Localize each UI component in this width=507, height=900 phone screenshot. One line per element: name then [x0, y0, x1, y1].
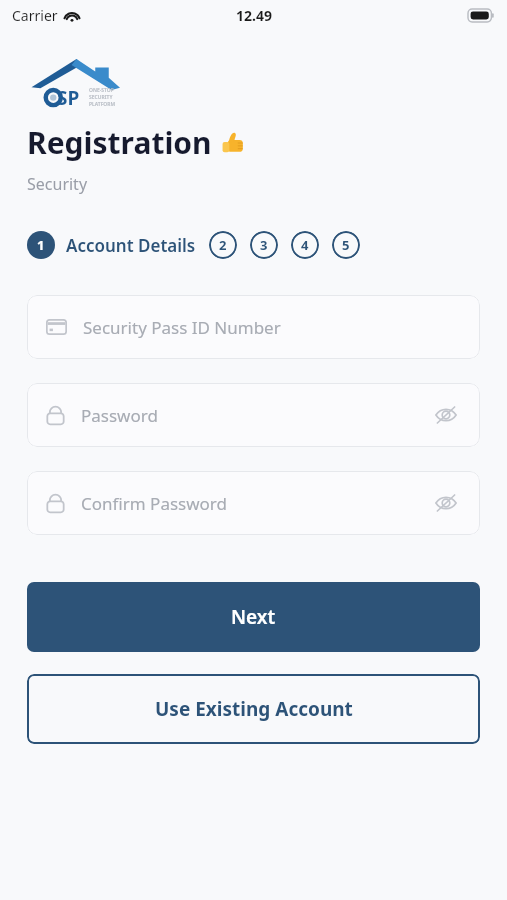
staticText: SP — [57, 85, 80, 108]
staticText: ONE-STOP — [89, 87, 114, 94]
staticText: 4 — [301, 236, 309, 254]
staticText: Carrier — [12, 6, 58, 25]
staticText: 12.49 — [236, 6, 272, 25]
staticText: 2 — [219, 236, 227, 254]
staticText: Use Existing Account — [155, 696, 353, 722]
button[interactable]: 1 — [27, 231, 55, 259]
button[interactable]: Next — [27, 582, 480, 652]
button[interactable]: Password — [27, 383, 480, 447]
button[interactable]: Confirm Password — [27, 471, 480, 535]
staticText: Confirm Password — [81, 492, 431, 515]
staticText: Security — [27, 173, 88, 195]
button[interactable]: Use Existing Account — [27, 674, 480, 744]
staticText: 5 — [342, 236, 350, 254]
staticText: Security Pass ID Number — [83, 316, 461, 339]
staticText: 1 — [37, 236, 45, 254]
staticText: Password — [81, 404, 431, 427]
staticText: Account Details — [66, 234, 196, 257]
button[interactable]: Toggle password visibility — [431, 400, 461, 430]
button[interactable]: Toggle password visibility — [431, 488, 461, 518]
staticText: Registration — [27, 122, 212, 163]
staticText: SECURITY — [89, 94, 113, 101]
staticText: PLATFORM — [89, 101, 116, 108]
staticText: Next — [231, 604, 276, 630]
button[interactable]: 2 — [209, 231, 237, 259]
button[interactable]: Security Pass ID Number — [27, 295, 480, 359]
button[interactable]: 3 — [250, 231, 278, 259]
button[interactable]: 5 — [332, 231, 360, 259]
staticText: 3 — [260, 236, 268, 254]
button[interactable]: 4 — [291, 231, 319, 259]
